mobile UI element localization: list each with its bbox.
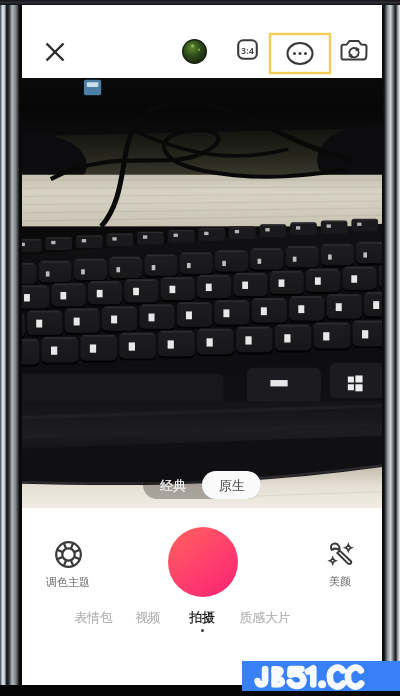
button[interactable]: Filter preview (182, 39, 207, 64)
button[interactable]: 质感大片 (239, 610, 291, 626)
staticText: 经典 (160, 477, 186, 493)
button[interactable]: 拍摄 (189, 610, 215, 632)
staticText: 表情包 (74, 610, 113, 626)
staticText: 调色主题 (46, 575, 90, 589)
staticText: 原生 (219, 477, 245, 493)
button[interactable]: Switch camera (340, 39, 368, 61)
staticText: 3:4 (241, 44, 254, 56)
button[interactable]: 表情包 (74, 610, 113, 626)
button[interactable]: 经典 (143, 471, 202, 499)
button[interactable]: Aspect ratio 3 by 4 (237, 39, 258, 60)
staticText: 质感大片 (239, 610, 291, 626)
staticText: 拍摄 (189, 610, 215, 626)
button[interactable]: More options (270, 34, 330, 73)
button[interactable]: 调色主题 (34, 541, 102, 589)
button[interactable]: 视频 (135, 610, 161, 626)
button[interactable]: Close (43, 40, 67, 64)
button[interactable]: 美颜 (306, 541, 374, 588)
button[interactable]: Take photo (168, 527, 238, 597)
button[interactable]: 原生 (202, 471, 261, 499)
staticText: 视频 (135, 610, 161, 626)
staticText: 美颜 (329, 574, 351, 588)
